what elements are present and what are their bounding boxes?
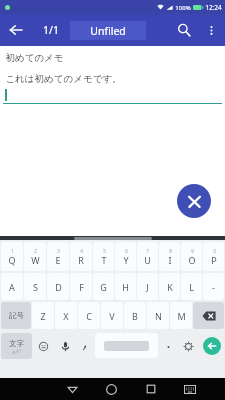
staticText: O (188, 254, 196, 266)
staticText: X (63, 310, 69, 322)
button[interactable]: More options (199, 18, 223, 42)
staticText: 4 (80, 248, 83, 254)
button[interactable]: - (203, 273, 224, 300)
button[interactable]: S (24, 273, 46, 300)
button[interactable]: 初めてのメモ (5, 52, 225, 64)
staticText: 1 (11, 248, 14, 254)
button[interactable]: J (137, 273, 158, 300)
staticText: 文字 (9, 339, 24, 348)
button[interactable]: Hide keyboard (170, 378, 209, 400)
button[interactable]: L (181, 273, 202, 300)
button[interactable]: New drawing note (177, 184, 211, 218)
staticText: 12:24 (205, 3, 222, 12)
staticText: Q (8, 254, 16, 266)
staticText: J (146, 281, 149, 293)
button[interactable]: 文字 (1, 333, 32, 359)
button[interactable]: 2 (24, 242, 46, 271)
staticText: T (101, 254, 107, 266)
staticText: ぁA1 (11, 348, 22, 354)
staticText: S (33, 281, 38, 293)
button[interactable]: Period (159, 333, 177, 359)
staticText: Z (40, 310, 46, 322)
button[interactable]: 3 (47, 242, 69, 271)
staticText: U (144, 254, 151, 266)
button[interactable]: Space (95, 333, 158, 358)
button[interactable]: Back (0, 14, 32, 46)
button[interactable]: 5 (93, 242, 114, 271)
staticText: I (168, 254, 172, 266)
staticText: 9 (191, 248, 194, 254)
button[interactable]: G (93, 273, 114, 300)
staticText: C (86, 310, 92, 322)
button[interactable]: Search (169, 15, 199, 45)
button[interactable]: Comma (76, 333, 94, 359)
button[interactable]: B (124, 302, 146, 329)
button[interactable]: C (78, 302, 100, 329)
button[interactable]: 8 (159, 242, 180, 271)
staticText: - (212, 281, 215, 293)
button[interactable]: Home (92, 378, 131, 400)
staticText: 6 (125, 248, 128, 254)
staticText: 2 (34, 248, 37, 254)
staticText: K (167, 281, 173, 293)
staticText: N (155, 310, 162, 322)
staticText: M (177, 310, 186, 322)
staticText: 0 (213, 248, 216, 254)
staticText: 3 (57, 248, 60, 254)
button[interactable]: 0 (203, 242, 224, 271)
button[interactable]: X (55, 302, 77, 329)
button[interactable]: N (147, 302, 169, 329)
button[interactable]: 1 (1, 242, 23, 271)
button[interactable]: 記号 (1, 302, 31, 329)
button[interactable]: 6 (115, 242, 136, 271)
staticText: G (100, 281, 107, 293)
button[interactable]: 4 (70, 242, 92, 271)
button[interactable]: Recent apps (131, 378, 170, 400)
staticText: 8 (169, 248, 172, 254)
button[interactable]: K (159, 273, 180, 300)
button[interactable]: 7 (137, 242, 158, 271)
button[interactable]: Settings (178, 333, 198, 359)
staticText: Y (123, 254, 129, 266)
staticText: これは初めてのメモです。 (5, 73, 122, 85)
staticText: 1/1 (43, 23, 59, 37)
button[interactable]: Back (52, 378, 92, 400)
button[interactable]: D (47, 273, 69, 300)
button[interactable]: V (101, 302, 123, 329)
staticText: H (122, 281, 129, 293)
staticText: 記号 (9, 311, 24, 320)
button[interactable]: Emoji (33, 333, 54, 359)
staticText: B (132, 310, 138, 322)
staticText: F (79, 281, 84, 293)
staticText: A (9, 281, 15, 293)
button[interactable]: Backspace (193, 302, 224, 329)
button[interactable]: 1/1 (32, 14, 70, 46)
staticText: 初めてのメモ (5, 52, 64, 64)
staticText: P (211, 254, 217, 266)
staticText: 7 (146, 248, 149, 254)
button[interactable]: F (70, 273, 92, 300)
button[interactable]: H (115, 273, 136, 300)
staticText: W (31, 254, 40, 266)
button[interactable]: Unfiled (70, 21, 146, 40)
staticText: L (189, 281, 194, 293)
button[interactable]: 9 (181, 242, 202, 271)
staticText: D (55, 281, 62, 293)
button[interactable]: Z (32, 302, 54, 329)
staticText: V (109, 310, 115, 322)
staticText: 100% (175, 4, 191, 12)
staticText: E (55, 254, 61, 266)
staticText: R (78, 254, 84, 266)
staticText: 5 (103, 248, 106, 254)
button[interactable]: Enter (199, 333, 224, 359)
staticText: Unfiled (90, 24, 126, 38)
button[interactable]: M (170, 302, 192, 329)
button[interactable]: A (1, 273, 23, 300)
button[interactable]: これは初めてのメモです。 (3, 73, 222, 104)
button[interactable]: Voice input (55, 333, 75, 359)
